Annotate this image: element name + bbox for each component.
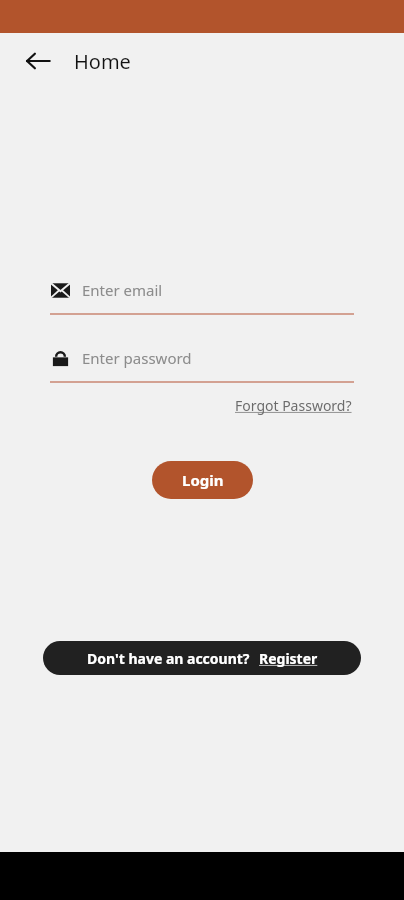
button[interactable]: Back [16, 39, 60, 83]
staticText: Login [182, 470, 224, 490]
button[interactable]: Email [50, 275, 354, 315]
button[interactable]: Forgot Password? [233, 393, 354, 418]
button[interactable]: Don't have an account? [43, 641, 361, 675]
button[interactable]: Password [50, 343, 354, 383]
staticText: Register [259, 649, 318, 668]
staticText: Forgot Password? [235, 396, 352, 415]
staticText: Enter password [82, 348, 192, 368]
staticText: Don't have an account? [87, 649, 250, 668]
other: Email [50, 280, 70, 300]
other: Password [50, 348, 70, 368]
staticText: Enter email [82, 280, 163, 300]
staticText: Home [74, 48, 131, 75]
button[interactable]: Login [152, 461, 253, 499]
